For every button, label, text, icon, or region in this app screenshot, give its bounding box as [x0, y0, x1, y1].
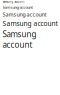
staticText: Samsung account: [2, 0, 24, 3]
staticText: Samsung account: [2, 11, 46, 18]
staticText: Samsung account: [2, 29, 36, 50]
staticText: Samsung account: [2, 4, 32, 10]
staticText: Samsung account: [2, 19, 57, 28]
